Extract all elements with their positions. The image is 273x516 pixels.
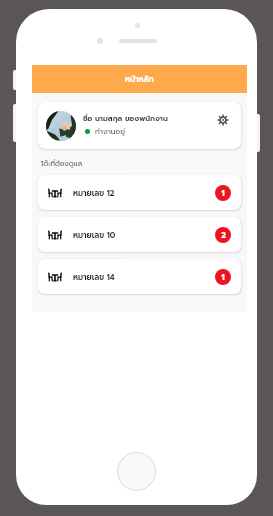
- staticText: 1: [221, 271, 225, 283]
- staticText: โต๊ะที่ต้องดูแล: [41, 158, 82, 169]
- staticText: หมายเลข 12: [73, 187, 115, 199]
- button[interactable]: หน้าหลัก: [32, 65, 247, 93]
- staticText: ทำงานอยู่: [95, 126, 126, 137]
- staticText: 1: [221, 187, 225, 199]
- button[interactable]: ชื่อ นามสกุล ของพนักงาน: [38, 102, 241, 149]
- button[interactable]: หมายเลข 14: [38, 259, 241, 294]
- button[interactable]: หมายเลข 12: [38, 175, 241, 210]
- staticText: ชื่อ นามสกุล ของพนักงาน: [83, 113, 168, 124]
- staticText: หมายเลข 14: [73, 271, 115, 283]
- button[interactable]: Settings: [218, 115, 228, 125]
- staticText: หน้าหลัก: [125, 73, 154, 85]
- staticText: 2: [221, 229, 226, 241]
- button[interactable]: Home: [117, 452, 156, 491]
- staticText: หมายเลข 10: [73, 229, 116, 241]
- button[interactable]: หมายเลข 10: [38, 217, 241, 252]
